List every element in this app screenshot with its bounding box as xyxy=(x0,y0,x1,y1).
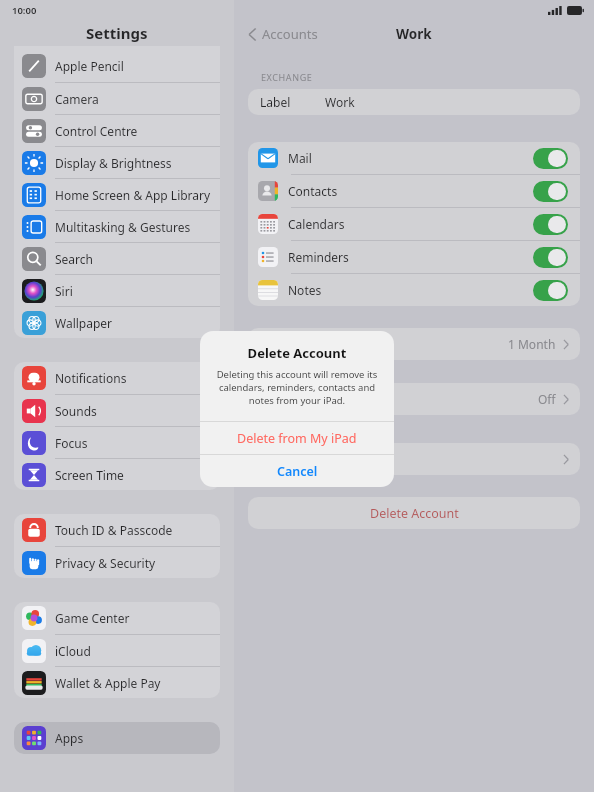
button[interactable]: Delete from My iPad xyxy=(200,422,394,454)
button[interactable]: On xyxy=(533,148,568,169)
staticText: Calendars xyxy=(288,216,345,232)
staticText: Display & Brightness xyxy=(55,155,172,171)
button[interactable]: Calendars xyxy=(248,208,580,240)
button[interactable]: Focus xyxy=(14,427,220,458)
button[interactable]: Camera xyxy=(14,83,220,114)
button[interactable]: On xyxy=(533,181,568,202)
staticText: Reminders xyxy=(288,249,349,265)
button[interactable]: Home Screen & App Library xyxy=(14,179,220,210)
staticText: Advanced Settings xyxy=(260,451,364,467)
button[interactable]: Advanced Settings xyxy=(248,443,580,475)
button[interactable]: Apple Pencil xyxy=(14,50,220,82)
button[interactable]: Search xyxy=(14,243,220,274)
button[interactable]: On xyxy=(533,280,568,301)
staticText: Control Centre xyxy=(55,123,138,139)
staticText: Siri xyxy=(55,283,73,299)
staticText: iCloud xyxy=(55,643,91,659)
staticText: Work xyxy=(325,94,355,110)
staticText: 10:00 xyxy=(12,4,37,17)
staticText: EXCHANGE xyxy=(261,71,313,83)
button[interactable]: Game Center xyxy=(14,602,220,634)
staticText: Mail xyxy=(288,150,312,166)
button[interactable]: Notes xyxy=(248,274,580,306)
button[interactable]: Screen Time xyxy=(14,459,220,490)
staticText: Delete from My iPad xyxy=(237,430,357,447)
staticText: Notes xyxy=(288,282,322,298)
staticText: Deleting this account will remove its ca… xyxy=(214,368,380,407)
staticText: Contacts xyxy=(288,183,338,199)
staticText: Notifications xyxy=(55,370,127,386)
staticText: Off xyxy=(538,391,556,407)
button[interactable]: On xyxy=(533,247,568,268)
button[interactable]: iCloud xyxy=(14,635,220,666)
staticText: Focus xyxy=(55,435,88,451)
staticText: Home Screen & App Library xyxy=(55,187,211,203)
staticText: Apps xyxy=(55,730,84,746)
staticText: Game Center xyxy=(55,610,130,626)
button[interactable]: Contacts xyxy=(248,175,580,207)
button[interactable]: Automatic Reply xyxy=(248,383,580,415)
button[interactable]: Touch ID & Passcode xyxy=(14,514,220,546)
staticText: Multitasking & Gestures xyxy=(55,219,191,235)
staticText: Sounds xyxy=(55,403,97,419)
staticText: Cancel xyxy=(277,463,318,480)
staticText: Delete Account xyxy=(200,344,394,362)
staticText: Camera xyxy=(55,91,99,107)
button[interactable]: Apps xyxy=(14,722,220,754)
staticText: Label xyxy=(260,94,291,110)
button[interactable]: Accounts xyxy=(244,22,322,46)
staticText: Work xyxy=(396,25,432,43)
staticText: 1 Month xyxy=(508,336,556,352)
button[interactable]: Delete Account xyxy=(248,497,580,529)
button[interactable]: Display & Brightness xyxy=(14,147,220,178)
button[interactable]: On xyxy=(533,214,568,235)
button[interactable]: Wallet & Apple Pay xyxy=(14,667,220,698)
button[interactable]: Reminders xyxy=(248,241,580,273)
staticText: Mail Days to Sync xyxy=(260,336,359,352)
staticText: Wallpaper xyxy=(55,315,113,331)
staticText: Screen Time xyxy=(55,467,124,483)
button[interactable]: Siri xyxy=(14,275,220,306)
button[interactable]: Label xyxy=(248,89,580,115)
staticText: Automatic Reply xyxy=(260,391,352,407)
staticText: Search xyxy=(55,251,93,267)
button[interactable]: Sounds xyxy=(14,395,220,426)
button[interactable]: Control Centre xyxy=(14,115,220,146)
staticText: Apple Pencil xyxy=(55,58,124,74)
button[interactable]: Multitasking & Gestures xyxy=(14,211,220,242)
button[interactable]: Cancel xyxy=(200,455,394,487)
button[interactable]: Privacy & Security xyxy=(14,547,220,578)
button[interactable]: Notifications xyxy=(14,362,220,394)
button[interactable]: Mail xyxy=(248,142,580,174)
staticText: Privacy & Security xyxy=(55,555,156,571)
staticText: Wallet & Apple Pay xyxy=(55,675,161,691)
button[interactable]: Apps xyxy=(14,722,220,754)
staticText: Delete Account xyxy=(370,505,459,522)
staticText: Accounts xyxy=(262,25,318,43)
button[interactable]: Mail Days to Sync xyxy=(248,328,580,360)
staticText: Touch ID & Passcode xyxy=(55,522,173,538)
staticText: Settings xyxy=(86,23,148,43)
button[interactable]: Wallpaper xyxy=(14,307,220,338)
